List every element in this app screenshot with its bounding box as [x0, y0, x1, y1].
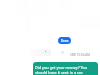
button[interactable]: Attachment	[29, 49, 51, 56]
staticText: Did you get your money? You should have …	[35, 65, 96, 75]
button[interactable]: Done	[58, 37, 71, 44]
staticText: Done	[61, 39, 69, 43]
button[interactable]: Did you get your money? You should have …	[33, 62, 98, 75]
staticText: SMS 10:54 AM	[70, 53, 90, 57]
